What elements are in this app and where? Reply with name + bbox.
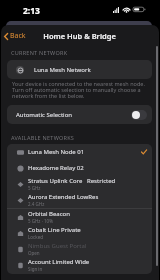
staticText: 5 GHz · 10%	[28, 218, 53, 224]
button[interactable]: Hexadome Relay 02	[7, 160, 152, 176]
button[interactable]: Luna Mesh Network	[7, 60, 152, 79]
button[interactable]: Luna Mesh Node 01	[7, 144, 152, 160]
staticText: 5 GHz	[28, 185, 41, 191]
staticText: Luna Mesh Network	[34, 66, 91, 74]
staticText: Back	[10, 31, 26, 41]
button[interactable]: Automatic Selection	[7, 105, 152, 124]
staticText: Luna Mesh Node 01	[28, 148, 85, 156]
staticText: Sign in	[28, 266, 43, 272]
other: Selected	[141, 149, 147, 155]
button[interactable]: Orbital Beacon	[7, 209, 152, 225]
button[interactable]: Stratus Uplink Core Restricted	[7, 176, 152, 192]
staticText: Cobalt Line Private	[28, 226, 81, 234]
staticText: Account Limited Wide	[28, 258, 90, 266]
staticText: 2.4 GHz	[28, 201, 45, 207]
staticText: Hexadome Relay 02	[28, 164, 84, 172]
button[interactable]: Account Limited Wide	[7, 257, 152, 273]
staticText: Home Hub & Bridge	[43, 31, 116, 41]
staticText: Automatic Selection	[16, 111, 73, 119]
staticText: Aurora Extended LowRes	[28, 193, 99, 201]
button[interactable]: Aurora Extended LowRes	[7, 192, 152, 208]
button[interactable]: Nimbus Guest Portal	[7, 241, 152, 257]
staticText: Your device is connected to the nearest …	[12, 80, 147, 100]
staticText: AVAILABLE NETWORKS	[11, 134, 75, 141]
staticText: Nimbus Guest Portal	[28, 242, 87, 250]
staticText: 2:13	[23, 5, 40, 17]
button[interactable]: Back	[1, 29, 30, 43]
staticText: CURRENT NETWORK	[11, 49, 68, 56]
other: Automatic Selection toggle	[131, 110, 147, 120]
staticText: Open	[28, 250, 40, 256]
staticText: Stratus Uplink Core Restricted	[28, 177, 116, 185]
button[interactable]: Cobalt Line Private	[7, 225, 152, 241]
staticText: Locked	[28, 234, 43, 240]
staticText: Orbital Beacon	[28, 210, 70, 218]
